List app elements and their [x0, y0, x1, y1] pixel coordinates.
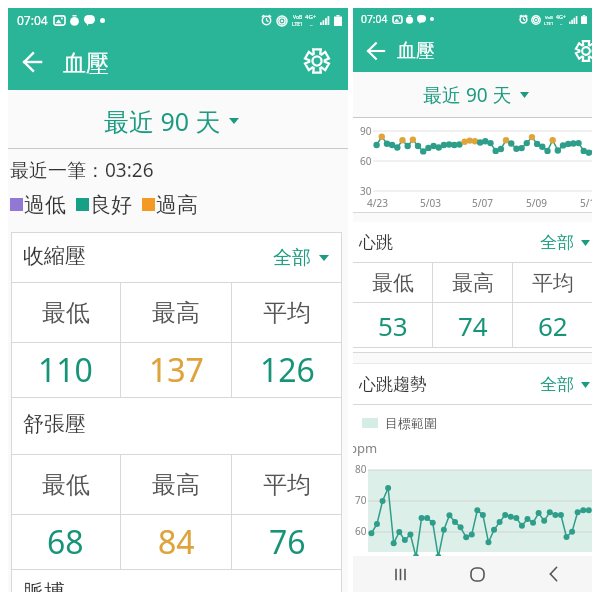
- staticText: 脈搏: [23, 579, 65, 592]
- staticText: 80: [355, 462, 367, 476]
- staticText: 最低: [42, 298, 90, 328]
- staticText: ..: [560, 20, 563, 26]
- staticText: 過低: [24, 192, 66, 218]
- staticText: 平均: [263, 470, 311, 500]
- staticText: 90: [360, 124, 372, 138]
- staticText: 5/09: [526, 196, 547, 210]
- staticText: 最近 90 天: [104, 104, 221, 138]
- button[interactable]: Recents: [380, 556, 420, 592]
- staticText: 4G+: [305, 13, 317, 21]
- staticText: 血壓: [63, 49, 109, 78]
- staticText: 07:04: [17, 12, 48, 28]
- staticText: bpm: [353, 439, 378, 457]
- staticText: LTE1: [544, 20, 554, 26]
- staticText: 53: [378, 308, 408, 343]
- staticText: 全部: [540, 232, 574, 253]
- button[interactable]: 全部: [273, 246, 329, 270]
- staticText: 74: [458, 308, 488, 343]
- staticText: 過高: [156, 192, 198, 218]
- staticText: 110: [38, 348, 93, 392]
- staticText: 平均: [263, 298, 311, 328]
- staticText: 70: [355, 493, 367, 507]
- staticText: 心跳趨勢: [359, 374, 427, 395]
- staticText: ..: [310, 21, 313, 28]
- staticText: 60: [355, 524, 367, 538]
- staticText: 30: [360, 184, 372, 198]
- staticText: 5/03: [420, 196, 441, 210]
- staticText: 5/1: [580, 196, 592, 210]
- staticText: 良好: [90, 192, 132, 218]
- staticText: 07:04: [361, 12, 388, 26]
- button[interactable]: 全部: [540, 232, 590, 253]
- staticText: 收縮壓: [23, 243, 86, 269]
- staticText: 126: [260, 348, 315, 392]
- staticText: 全部: [540, 374, 574, 395]
- staticText: 84: [158, 520, 195, 564]
- button[interactable]: Back: [14, 44, 50, 80]
- staticText: 62: [538, 308, 568, 343]
- button[interactable]: Settings: [571, 36, 592, 66]
- staticText: 最近 90 天: [423, 82, 512, 108]
- button[interactable]: 全部: [540, 374, 590, 395]
- staticText: 目標範圍: [385, 415, 437, 431]
- button[interactable]: Settings: [299, 43, 335, 79]
- staticText: 心跳: [359, 232, 393, 253]
- button[interactable]: 最近 90 天: [423, 82, 529, 108]
- staticText: 舒張壓: [23, 411, 86, 437]
- staticText: 76: [269, 520, 306, 564]
- staticText: 最高: [452, 270, 494, 296]
- staticText: 最高: [152, 298, 200, 328]
- staticText: 5/07: [472, 196, 493, 210]
- staticText: 最近一筆：03:26: [10, 157, 154, 183]
- staticText: 最低: [372, 270, 414, 296]
- staticText: 4/23: [367, 196, 388, 210]
- staticText: 68: [47, 520, 84, 564]
- staticText: 平均: [532, 270, 574, 296]
- staticText: 血壓: [397, 39, 435, 63]
- staticText: 全部: [273, 246, 311, 270]
- staticText: LTE1: [292, 21, 303, 28]
- staticText: 最高: [152, 470, 200, 500]
- button[interactable]: Home: [457, 556, 497, 592]
- button[interactable]: 最近 90 天: [104, 104, 239, 138]
- staticText: 137: [149, 348, 204, 392]
- button[interactable]: Back: [533, 556, 573, 592]
- staticText: 60: [360, 154, 372, 168]
- staticText: VoB: [545, 14, 553, 20]
- staticText: 4G+: [556, 13, 566, 20]
- button[interactable]: Back: [361, 36, 391, 66]
- staticText: 最低: [42, 470, 90, 500]
- staticText: VoB: [293, 14, 303, 21]
